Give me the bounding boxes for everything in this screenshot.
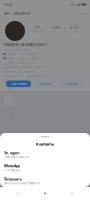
button[interactable]: Эл. адрес	[0, 151, 90, 159]
staticText: Запросить номер телефона	[4, 182, 39, 185]
button[interactable]: Контакты	[60, 81, 84, 87]
button[interactable]: More	[79, 9, 87, 18]
staticText: Розница / Опт · Гарантия 12 мес	[3, 74, 45, 78]
staticText: Товары · Тюнинг авто	[7, 52, 35, 56]
staticText: SPb.AUTO	[13, 11, 30, 16]
staticText: 4G	[71, 2, 75, 7]
staticText: Бизнес · Автозапчасти	[3, 48, 31, 51]
staticText: 14:42	[3, 2, 12, 7]
button[interactable]: Recents	[63, 188, 81, 199]
staticText: Записи	[52, 30, 58, 33]
staticText: РОЖДЕНЫ НА ЖИВЫХ АВТО	[3, 43, 46, 47]
staticText: Позвонить	[4, 177, 22, 181]
staticText: 4 753	[70, 25, 79, 30]
staticText: Эл. адрес	[4, 151, 20, 155]
button[interactable]: Написать	[33, 81, 57, 87]
staticText: Написать	[40, 82, 51, 86]
staticText: Бесплатная доставка при заказе	[3, 66, 41, 69]
staticText: от 5 000 ₽ в любую точку РФ	[3, 70, 34, 74]
button[interactable]: Позвонить	[0, 177, 90, 185]
staticText: 71mail@spb-auto.ru	[4, 155, 29, 159]
staticText: Доставка по всей России	[3, 61, 35, 65]
staticText: 1 560	[51, 25, 60, 30]
staticText: Услуги · Сервис и ремонт	[7, 57, 40, 60]
button[interactable]: Подписаться	[6, 81, 31, 87]
staticText: Подписаться	[11, 82, 26, 86]
button[interactable]: Back	[3, 9, 11, 18]
staticText: 278	[33, 25, 39, 30]
staticText: Контакты	[36, 142, 54, 147]
staticText: +7 977 808-22-41	[4, 168, 20, 172]
staticText: Контакты	[66, 82, 78, 86]
staticText: WhatsApp	[4, 164, 20, 168]
button[interactable]: Back	[9, 188, 27, 199]
button[interactable]: WhatsApp	[0, 164, 90, 172]
staticText: Подписки	[70, 30, 79, 33]
button[interactable]: Home	[36, 188, 54, 199]
staticText: Подписчики	[31, 30, 42, 33]
